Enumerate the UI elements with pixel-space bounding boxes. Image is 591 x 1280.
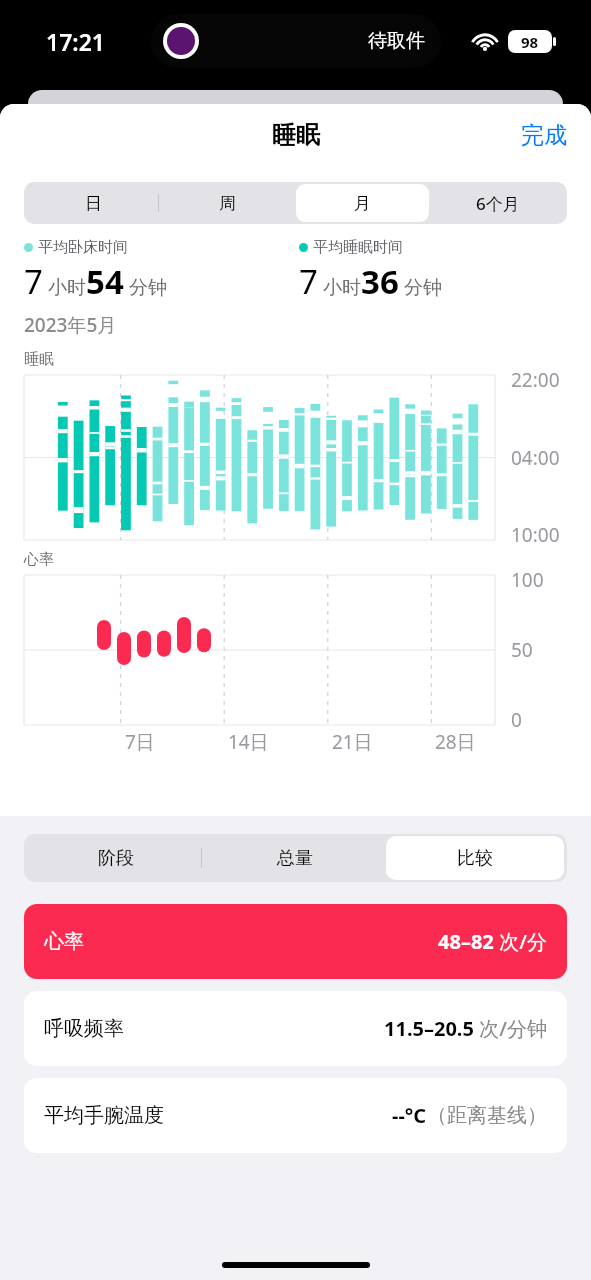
staticText: 待取件 xyxy=(368,29,425,53)
button[interactable]: 心率 xyxy=(24,904,567,979)
staticText: 小时 xyxy=(318,274,361,300)
staticText: --°C xyxy=(392,1102,427,1129)
staticText: 分钟 xyxy=(399,274,442,300)
staticText: 日 xyxy=(85,193,102,214)
staticText: 98 xyxy=(521,32,539,52)
staticText: 次/分钟 xyxy=(474,1015,547,1042)
staticText: 0 xyxy=(511,707,591,733)
staticText: 7 xyxy=(24,259,43,304)
staticText: 21日 xyxy=(332,729,373,755)
staticText: 周 xyxy=(219,193,236,214)
button[interactable]: 日 xyxy=(27,184,159,222)
staticText: 次/分 xyxy=(494,928,547,955)
staticText: 呼吸频率 xyxy=(44,1016,124,1041)
staticText: 50 xyxy=(511,637,591,663)
staticText: 11.5–20.5 xyxy=(384,1015,474,1042)
button[interactable]: 总量 xyxy=(206,836,384,880)
staticText: 阶段 xyxy=(98,847,134,870)
button[interactable]: 阶段 xyxy=(27,836,204,880)
staticText: 平均手腕温度 xyxy=(44,1103,164,1128)
staticText: 2023年5月 xyxy=(24,312,117,338)
button[interactable]: 呼吸频率 xyxy=(24,991,567,1066)
staticText: （距离基线） xyxy=(427,1103,547,1128)
staticText: 完成 xyxy=(521,121,567,150)
staticText: 48–82 xyxy=(438,928,494,955)
staticText: 22:00 xyxy=(511,367,591,393)
staticText: 7日 xyxy=(125,729,155,755)
staticText: 54 xyxy=(86,259,124,304)
staticText: 100 xyxy=(511,567,591,593)
button[interactable]: 比较 xyxy=(386,836,564,880)
button[interactable]: 月 xyxy=(296,184,429,222)
staticText: 小时 xyxy=(43,274,86,300)
staticText: 比较 xyxy=(457,847,493,870)
staticText: 04:00 xyxy=(511,445,591,471)
button[interactable]: 周 xyxy=(161,184,294,222)
staticText: 17:21 xyxy=(46,26,105,57)
staticText: 心率 xyxy=(44,929,84,954)
staticText: 分钟 xyxy=(124,274,167,300)
button[interactable]: 6个月 xyxy=(431,184,564,222)
staticText: 6个月 xyxy=(476,192,520,215)
staticText: 平均卧床时间 xyxy=(38,238,128,257)
staticText: 7 xyxy=(299,259,318,304)
staticText: 28日 xyxy=(435,729,476,755)
staticText: 心率 xyxy=(24,550,54,569)
staticText: 10:00 xyxy=(511,522,591,548)
staticText: 月 xyxy=(354,193,371,214)
staticText: 总量 xyxy=(277,847,313,870)
staticText: 36 xyxy=(361,259,399,304)
staticText: 睡眠 xyxy=(272,120,320,150)
staticText: 14日 xyxy=(228,729,269,755)
staticText: 平均睡眠时间 xyxy=(313,238,403,257)
button[interactable]: 完成 xyxy=(511,115,577,156)
staticText: 睡眠 xyxy=(24,350,54,369)
button[interactable]: 平均手腕温度 xyxy=(24,1078,567,1153)
